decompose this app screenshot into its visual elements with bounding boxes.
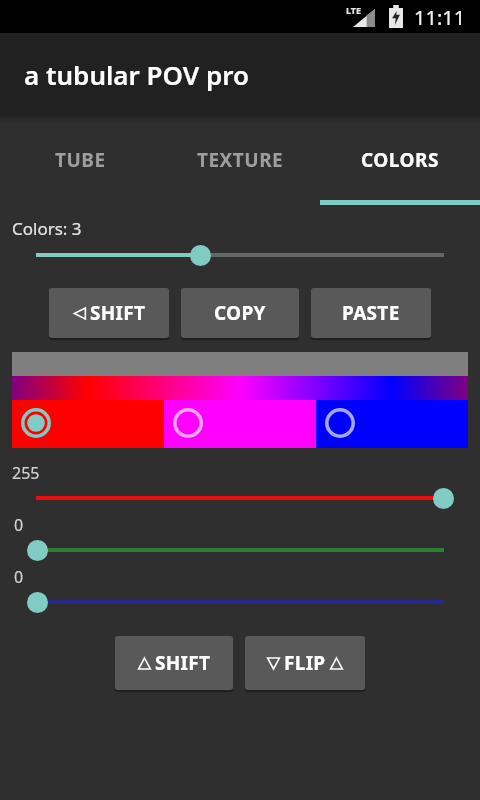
staticText: LTE xyxy=(346,4,362,16)
button[interactable]: COLORS xyxy=(320,115,480,205)
button[interactable]: COPY xyxy=(181,288,299,338)
staticText: SHIFT xyxy=(155,650,211,676)
button[interactable]: FLIP xyxy=(245,636,365,690)
button[interactable] xyxy=(27,540,48,561)
button[interactable]: SHIFT xyxy=(49,288,169,338)
button[interactable] xyxy=(12,400,164,448)
staticText: PASTE xyxy=(342,300,400,326)
staticText: 255 xyxy=(12,462,40,484)
staticText: COPY xyxy=(214,300,266,326)
button[interactable]: TEXTURE xyxy=(160,115,320,205)
button[interactable]: PASTE xyxy=(311,288,431,338)
button[interactable] xyxy=(316,400,468,448)
staticText: 11:11 xyxy=(414,4,466,31)
staticText: TEXTURE xyxy=(197,147,284,173)
button[interactable] xyxy=(190,245,211,266)
button[interactable] xyxy=(164,400,316,448)
button[interactable] xyxy=(433,488,454,509)
button[interactable] xyxy=(27,592,48,613)
staticText: a tubular POV pro xyxy=(24,57,250,92)
staticText: Colors: 3 xyxy=(12,217,82,240)
button[interactable]: TUBE xyxy=(0,115,160,205)
staticText: TUBE xyxy=(55,147,106,173)
staticText: COLORS xyxy=(361,147,440,173)
staticText: SHIFT xyxy=(90,300,146,326)
staticText: 0 xyxy=(14,514,24,536)
staticText: FLIP xyxy=(284,650,326,676)
button[interactable]: SHIFT xyxy=(115,636,233,690)
staticText: 0 xyxy=(14,566,24,588)
